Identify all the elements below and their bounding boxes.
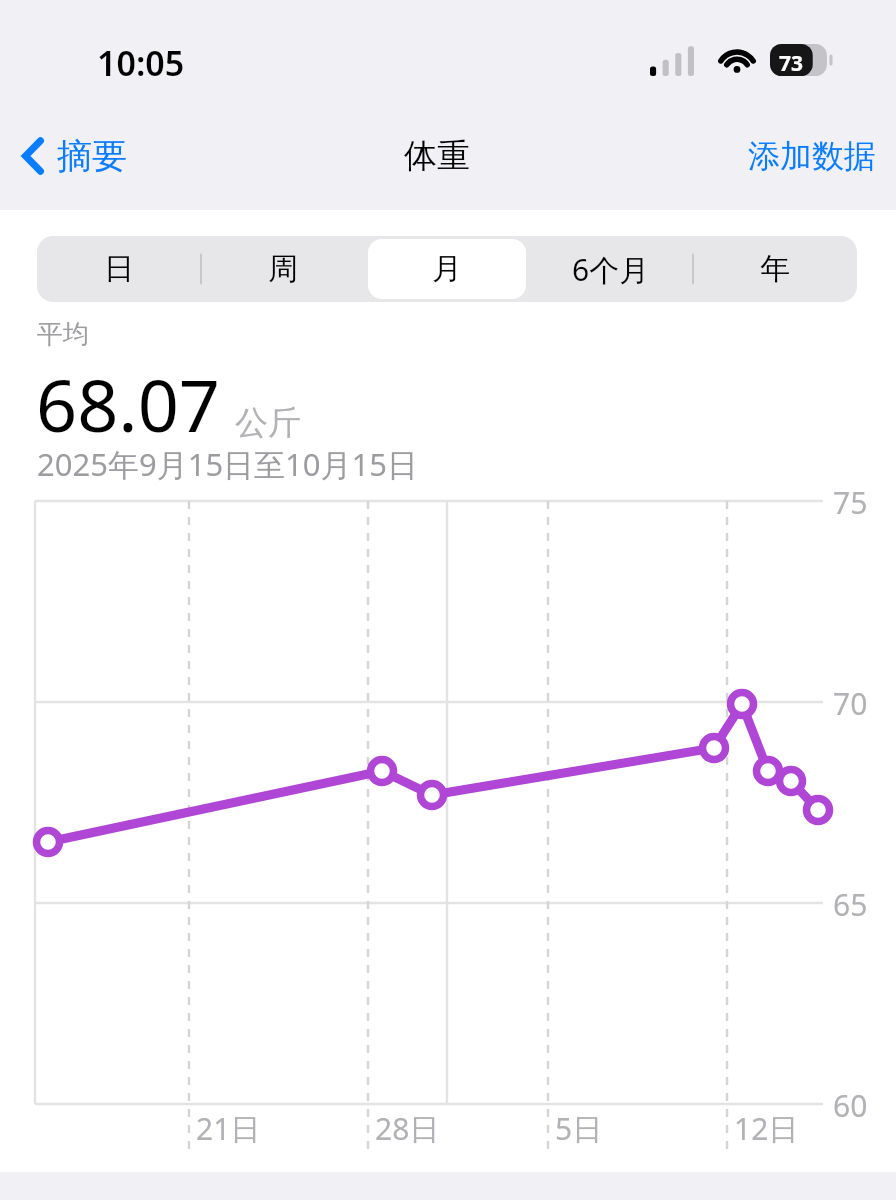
staticText: 周 — [268, 250, 298, 288]
staticText: 体重 — [404, 135, 470, 177]
staticText: 6个月 — [572, 249, 650, 290]
staticText: 12日 — [734, 1108, 799, 1149]
other: Cellular signal — [650, 46, 694, 76]
staticText: 28日 — [375, 1108, 440, 1149]
staticText: 21日 — [196, 1108, 261, 1149]
staticText: 添加数据 — [748, 136, 876, 176]
staticText: 75 — [833, 482, 868, 523]
other: Battery 73 percent — [770, 44, 834, 76]
staticText: 60 — [833, 1085, 868, 1126]
staticText: 摘要 — [57, 134, 127, 178]
staticText: 65 — [833, 884, 868, 925]
button[interactable]: 添加数据 — [742, 128, 882, 184]
staticText: 68.07 — [36, 355, 221, 453]
button[interactable]: 月 — [365, 236, 529, 302]
staticText: 70 — [833, 683, 868, 724]
staticText: 月 — [432, 250, 462, 288]
button[interactable]: 周 — [201, 236, 365, 302]
staticText: 5日 — [555, 1108, 603, 1149]
staticText: 2025年9月15日至10月15日 — [37, 443, 419, 485]
other: Wi-Fi — [716, 42, 758, 74]
button[interactable]: 摘要 — [16, 126, 133, 186]
staticText: 73 — [779, 49, 804, 78]
staticText: 10:05 — [97, 40, 185, 86]
staticText: 年 — [760, 250, 790, 288]
staticText: 公斤 — [235, 402, 301, 444]
button[interactable]: 年 — [693, 236, 857, 302]
button[interactable]: 日 — [37, 236, 201, 302]
staticText: 平均 — [37, 318, 89, 351]
button[interactable]: 6个月 — [529, 236, 693, 302]
staticText: 日 — [104, 250, 134, 288]
